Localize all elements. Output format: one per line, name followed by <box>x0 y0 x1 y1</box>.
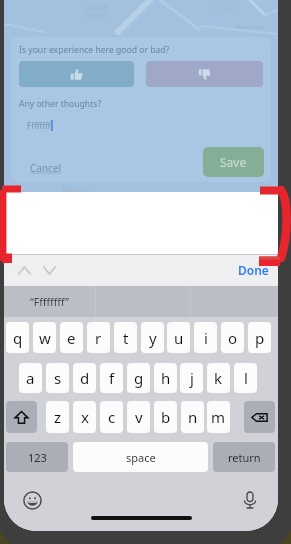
button[interactable]: e <box>60 322 83 353</box>
staticText: m <box>211 407 226 427</box>
staticText: t <box>123 328 129 348</box>
button[interactable]: h <box>154 363 177 393</box>
staticText: p <box>255 328 265 348</box>
staticText: 123 <box>28 450 47 465</box>
button[interactable]: j <box>180 363 203 393</box>
staticText: w <box>39 328 51 348</box>
staticText: d <box>80 368 90 388</box>
staticText: Save <box>220 154 247 170</box>
button[interactable]: b <box>154 401 177 433</box>
staticText: u <box>174 328 184 348</box>
button[interactable]: a <box>19 363 42 393</box>
staticText: Any other thoughts? <box>19 98 102 110</box>
button[interactable]: o <box>221 322 244 353</box>
staticText: Marsh Cove <box>236 24 264 31</box>
button[interactable]: i <box>194 322 217 353</box>
staticText: Milton <box>62 183 90 195</box>
staticText: h <box>161 368 171 388</box>
button[interactable]: s <box>46 363 69 393</box>
button[interactable]: Emoji keyboard <box>23 491 42 510</box>
staticText: v <box>135 407 143 427</box>
staticText: j <box>190 368 194 388</box>
button[interactable]: return <box>213 442 275 472</box>
staticText: Is your experience here good or bad? <box>19 44 170 56</box>
staticText: r <box>95 328 102 348</box>
button[interactable]: Cancel <box>30 161 62 175</box>
staticText: i <box>204 328 208 348</box>
button[interactable]: x <box>73 401 96 433</box>
button[interactable]: d <box>73 363 96 393</box>
staticText: Done <box>238 262 269 278</box>
button[interactable]: Backspace <box>244 401 275 433</box>
button[interactable]: Shift <box>6 401 37 433</box>
staticText: o <box>228 328 238 348</box>
button[interactable]: u <box>167 322 190 353</box>
button[interactable]: f <box>100 363 123 393</box>
staticText: n <box>188 407 198 427</box>
button[interactable]: l <box>234 363 257 393</box>
staticText: l <box>244 368 248 388</box>
button[interactable]: z <box>46 401 69 433</box>
button[interactable]: Dictation <box>240 490 260 510</box>
button[interactable]: Good <box>19 61 134 87</box>
button[interactable]: Save <box>203 147 264 177</box>
button[interactable]: Bad <box>146 61 263 87</box>
button[interactable]: v <box>127 401 150 433</box>
staticText: q <box>13 328 23 348</box>
staticText: s <box>54 368 62 388</box>
staticText: e <box>67 328 76 348</box>
button[interactable]: t <box>114 322 137 353</box>
button[interactable]: “Ffffffff” <box>4 286 95 317</box>
staticText: Ffffffff <box>27 120 51 131</box>
staticText: x <box>81 407 89 427</box>
button[interactable]: q <box>6 322 29 353</box>
button[interactable]: r <box>87 322 110 353</box>
button[interactable]: Next field <box>37 258 61 282</box>
button[interactable]: y <box>141 322 164 353</box>
staticText: a <box>26 368 35 388</box>
button[interactable]: n <box>181 401 204 433</box>
button[interactable]: p <box>248 322 271 353</box>
staticText: y <box>149 328 157 348</box>
staticText: return <box>228 450 261 465</box>
button[interactable]: Done <box>232 257 274 283</box>
button[interactable]: Previous field <box>12 258 36 282</box>
button[interactable]: 123 <box>6 442 68 472</box>
staticText: z <box>54 407 62 427</box>
button[interactable]: g <box>127 363 150 393</box>
button[interactable]: c <box>100 401 123 433</box>
staticText: b <box>161 407 171 427</box>
staticText: “Ffffffff” <box>30 295 69 309</box>
staticText: Cancel <box>30 161 62 175</box>
staticText: k <box>214 368 223 388</box>
staticText: space <box>126 450 156 465</box>
button[interactable]: space <box>73 442 208 472</box>
button[interactable]: w <box>33 322 56 353</box>
staticText: c <box>108 407 116 427</box>
button[interactable]: m <box>207 401 230 433</box>
button[interactable]: k <box>207 363 230 393</box>
staticText: g <box>134 368 144 388</box>
staticText: f <box>109 368 115 388</box>
